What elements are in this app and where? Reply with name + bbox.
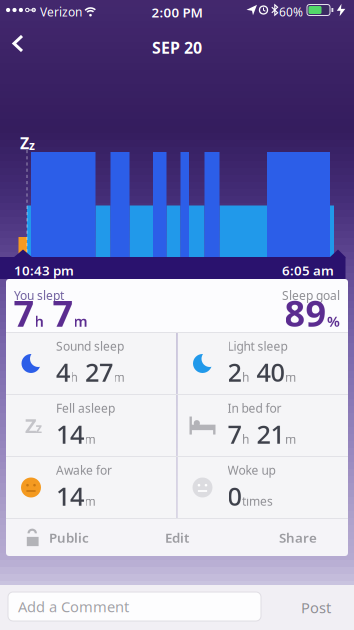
staticText: Z: [20, 132, 29, 154]
staticText: Light sleep: [227, 338, 287, 354]
staticText: Public: [49, 529, 89, 546]
staticText: Z: [25, 412, 37, 439]
staticText: 14: [56, 417, 84, 451]
staticText: h: [70, 369, 77, 385]
staticText: 21: [249, 417, 284, 451]
staticText: m: [73, 311, 87, 331]
button[interactable]: Share: [279, 519, 348, 556]
staticText: z: [29, 137, 35, 153]
staticText: 89: [284, 289, 326, 337]
staticText: Fell asleep: [56, 400, 115, 416]
staticText: 2:00 PM: [151, 3, 202, 21]
button[interactable]: Back: [6, 32, 36, 56]
staticText: Add a Comment: [18, 597, 129, 616]
staticText: m: [84, 493, 95, 509]
staticText: z: [35, 419, 42, 437]
button[interactable]: Post: [286, 585, 346, 630]
staticText: 4: [56, 355, 70, 389]
staticText: 0: [227, 479, 241, 513]
staticText: Edit: [165, 529, 189, 546]
staticText: %: [327, 311, 340, 331]
staticText: SEP 20: [152, 37, 202, 58]
staticText: Awake for: [56, 462, 112, 478]
staticText: Post: [301, 598, 331, 617]
staticText: m: [113, 369, 124, 385]
staticText: Woke up: [227, 462, 275, 478]
button[interactable]: Add a Comment: [8, 592, 261, 621]
staticText: 14: [56, 479, 84, 513]
staticText: 7: [13, 289, 34, 337]
staticText: h: [34, 311, 43, 331]
staticText: Verizon: [40, 4, 82, 20]
staticText: Share: [279, 529, 317, 546]
staticText: 6:05 am: [282, 261, 334, 279]
staticText: Sleep goal: [282, 287, 340, 303]
button[interactable]: Edit: [147, 519, 207, 556]
staticText: You slept: [14, 287, 64, 303]
staticText: 40: [249, 355, 284, 389]
staticText: In bed for: [227, 400, 281, 416]
staticText: h: [242, 431, 249, 447]
staticText: 2: [227, 355, 241, 389]
staticText: m: [285, 431, 296, 447]
staticText: 27: [78, 355, 113, 389]
staticText: 7: [227, 417, 241, 451]
staticText: times: [242, 493, 273, 509]
staticText: 60%: [279, 4, 303, 20]
staticText: m: [285, 369, 296, 385]
staticText: 7: [43, 289, 73, 337]
staticText: h: [242, 369, 249, 385]
staticText: 10:43 pm: [14, 261, 74, 279]
staticText: Sound sleep: [56, 338, 124, 354]
staticText: m: [84, 431, 95, 447]
button[interactable]: Public: [6, 519, 89, 556]
